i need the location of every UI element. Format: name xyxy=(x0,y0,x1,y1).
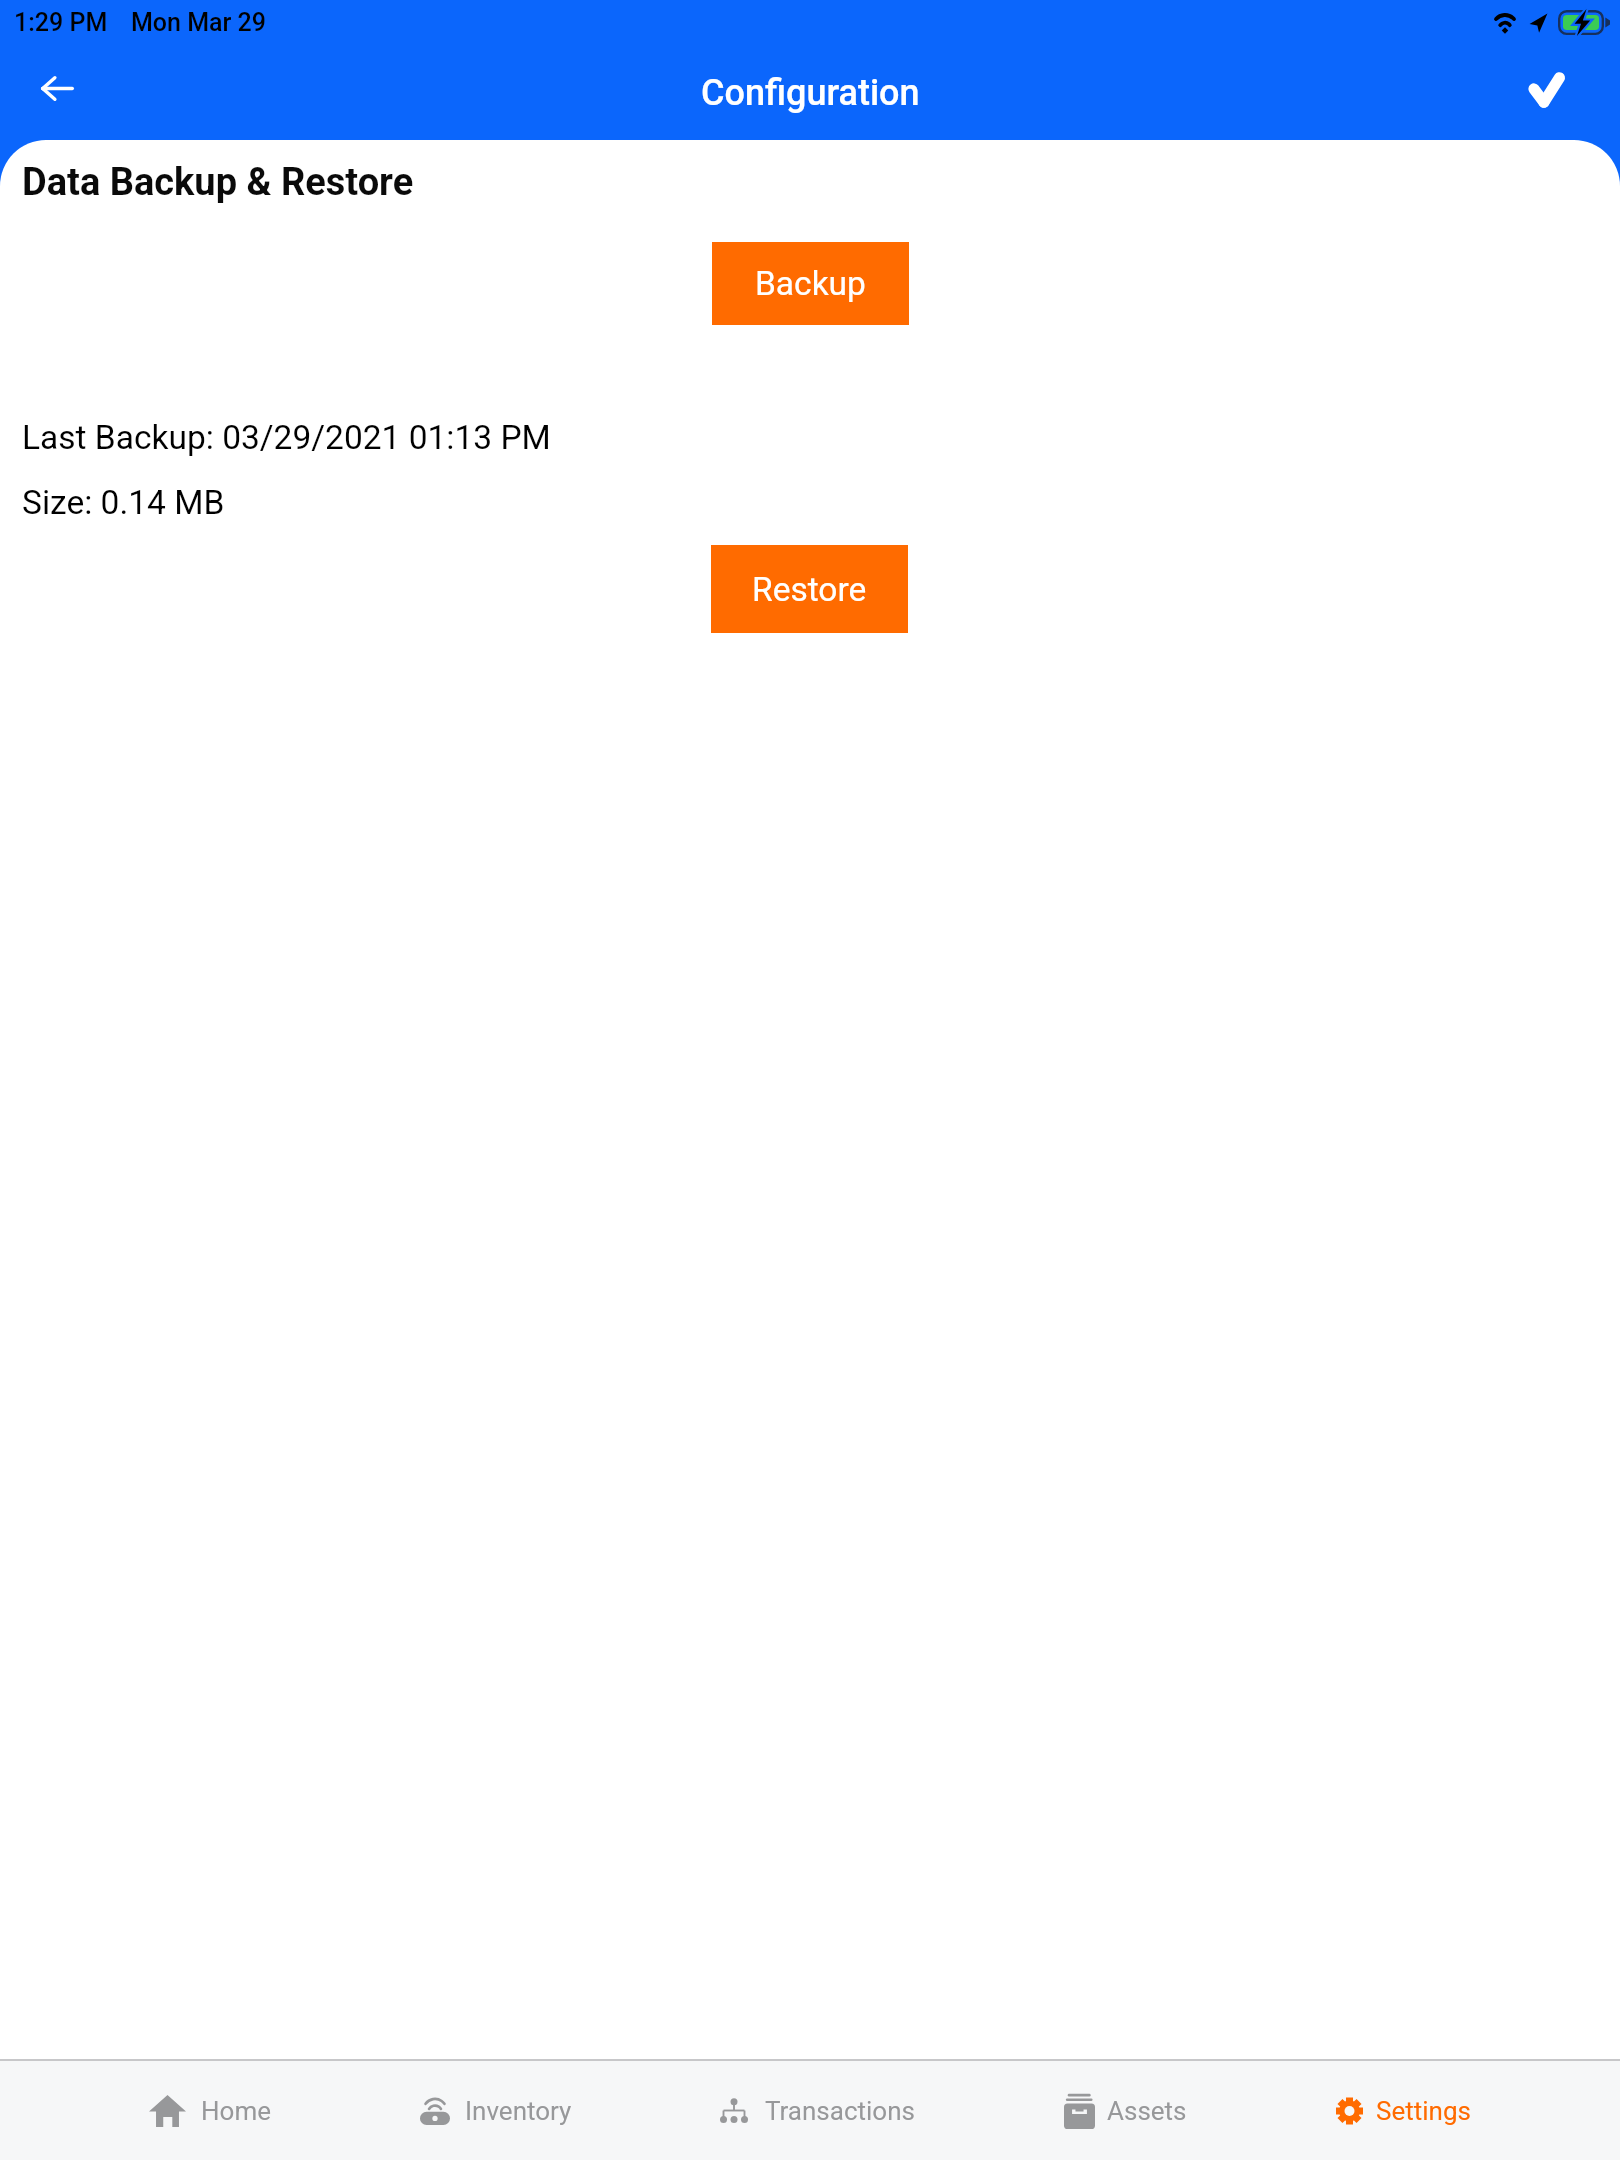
staticText: Transactions xyxy=(765,2096,915,2126)
button[interactable]: Back xyxy=(12,44,102,133)
staticText: Settings xyxy=(1376,2096,1471,2126)
button[interactable]: Settings xyxy=(1336,2061,1471,2160)
staticText: Backup xyxy=(755,264,866,303)
staticText: Restore xyxy=(752,570,867,609)
button[interactable]: Restore xyxy=(711,545,908,633)
staticText: Last Backup: 03/29/2021 01:13 PM xyxy=(22,418,551,457)
button[interactable]: Confirm xyxy=(1506,46,1586,134)
button[interactable]: Transactions xyxy=(720,2061,915,2160)
staticText: Size: 0.14 MB xyxy=(22,483,225,522)
staticText: Configuration xyxy=(701,72,920,114)
staticText: Mon Mar 29 xyxy=(131,8,266,37)
button[interactable]: Inventory xyxy=(420,2061,572,2160)
staticText: Assets xyxy=(1107,2096,1187,2126)
staticText: Data Backup & Restore xyxy=(22,160,414,205)
staticText: Home xyxy=(201,2096,271,2126)
button[interactable]: Backup xyxy=(712,242,909,325)
staticText: 1:29 PM xyxy=(14,8,108,37)
button[interactable]: Assets xyxy=(1064,2061,1187,2160)
button[interactable]: Home xyxy=(149,2061,271,2160)
staticText: Inventory xyxy=(465,2096,572,2126)
